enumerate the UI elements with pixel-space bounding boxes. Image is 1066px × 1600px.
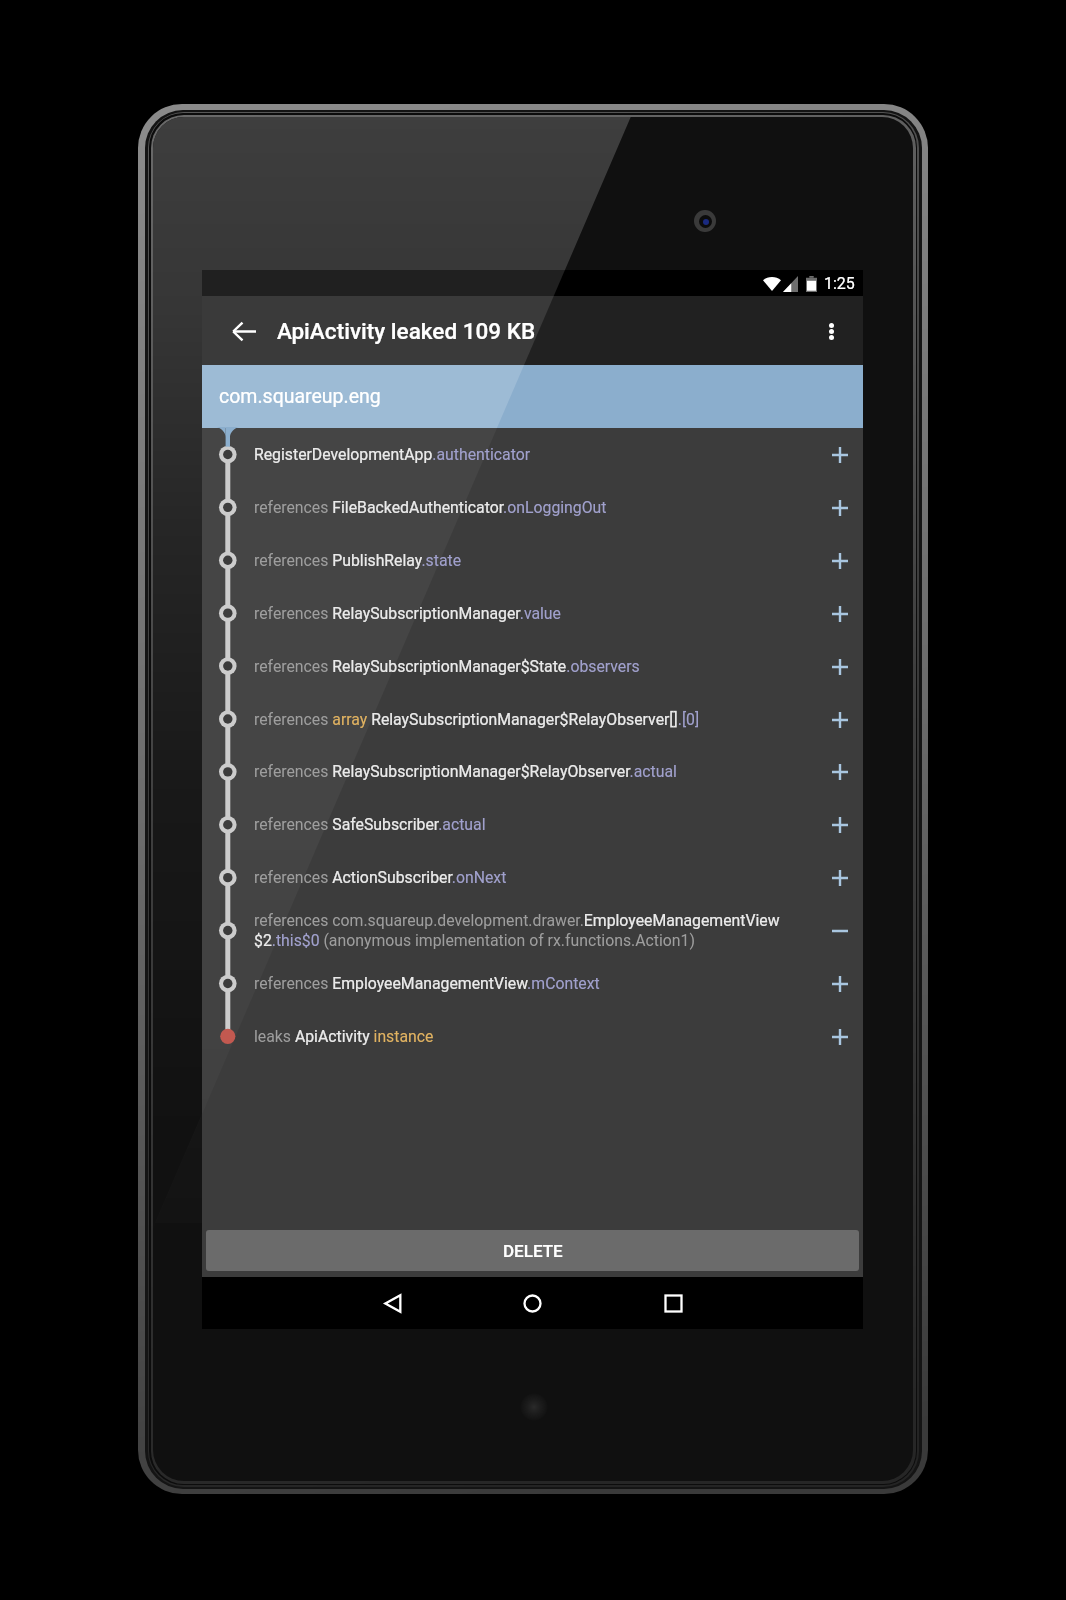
button[interactable]: More options xyxy=(807,307,855,355)
staticText: leaks ApiActivity instance xyxy=(254,1027,434,1046)
staticText: RegisterDevelopmentApp.authenticator xyxy=(254,445,531,464)
button[interactable]: leaks ApiActivity instance xyxy=(202,1010,863,1063)
staticText: references RelaySubscriptionManager$Rela… xyxy=(254,762,677,781)
button[interactable]: references RelaySubscriptionManager$Rela… xyxy=(202,745,863,798)
button[interactable]: Back xyxy=(369,1279,417,1327)
button[interactable]: Home xyxy=(508,1279,556,1327)
staticText: references FileBackedAuthenticator.onLog… xyxy=(254,498,607,517)
button[interactable]: Recent apps xyxy=(649,1279,697,1327)
button[interactable]: references FileBackedAuthenticator.onLog… xyxy=(202,481,863,534)
staticText: references RelaySubscriptionManager.valu… xyxy=(254,604,561,623)
staticText: references array RelaySubscriptionManage… xyxy=(254,710,700,729)
button[interactable]: Navigate up xyxy=(218,305,270,357)
button[interactable]: references com.squareup.development.draw… xyxy=(202,904,863,957)
button[interactable]: references ActionSubscriber.onNext xyxy=(202,851,863,904)
staticText: ApiActivity leaked 109 KB xyxy=(277,318,536,344)
button[interactable]: references array RelaySubscriptionManage… xyxy=(202,693,863,746)
button[interactable]: references RelaySubscriptionManager$Stat… xyxy=(202,640,863,693)
button[interactable]: RegisterDevelopmentApp.authenticator xyxy=(202,428,863,481)
staticText: references RelaySubscriptionManager$Stat… xyxy=(254,657,640,676)
staticText: references PublishRelay.state xyxy=(254,551,462,570)
staticText: references com.squareup.development.draw… xyxy=(254,911,780,950)
staticText: references ActionSubscriber.onNext xyxy=(254,868,507,887)
staticText: com.squareup.eng xyxy=(219,385,381,408)
button[interactable]: references SafeSubscriber.actual xyxy=(202,798,863,851)
staticText: references EmployeeManagementView.mConte… xyxy=(254,974,600,993)
staticText: references SafeSubscriber.actual xyxy=(254,815,486,834)
staticText: DELETE xyxy=(503,1241,563,1261)
button[interactable]: references EmployeeManagementView.mConte… xyxy=(202,957,863,1010)
button[interactable]: DELETE xyxy=(206,1230,859,1271)
staticText: 1:25 xyxy=(824,274,855,293)
button[interactable]: com.squareup.eng xyxy=(202,365,863,428)
button[interactable]: references RelaySubscriptionManager.valu… xyxy=(202,587,863,640)
button[interactable]: references PublishRelay.state xyxy=(202,534,863,587)
